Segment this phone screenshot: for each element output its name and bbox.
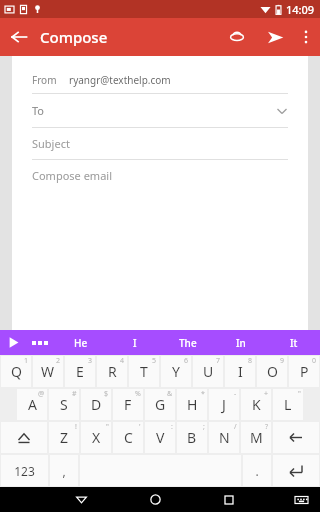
button[interactable]: From [32, 66, 288, 93]
button[interactable]: Back [0, 18, 38, 56]
button[interactable]: I [225, 356, 255, 387]
button[interactable]: U [193, 356, 223, 387]
button[interactable]: . [243, 455, 271, 486]
staticText: From [32, 73, 57, 87]
staticText: + [264, 389, 269, 399]
button[interactable]: A [17, 389, 47, 420]
staticText: ' [139, 422, 141, 432]
staticText: K [252, 395, 261, 414]
staticText: N [219, 428, 230, 447]
button[interactable]: D [81, 389, 111, 420]
staticText: Subject [32, 136, 70, 151]
staticText: 14:09 [286, 2, 315, 17]
staticText: S [60, 395, 68, 414]
staticText: . [255, 463, 259, 479]
button[interactable]: Z [49, 422, 79, 453]
staticText: P [300, 362, 309, 381]
staticText: 9 [280, 356, 285, 366]
button[interactable]: 123 [1, 455, 48, 486]
staticText: O [267, 362, 278, 381]
staticText: D [91, 395, 102, 414]
button[interactable]: He [54, 330, 108, 355]
button[interactable]: P [289, 356, 319, 387]
button[interactable]: K [241, 389, 271, 420]
staticText: F [124, 395, 132, 414]
staticText: The [179, 336, 197, 350]
button[interactable]: Attach [218, 18, 256, 56]
staticText: & [167, 389, 173, 399]
staticText: He [74, 336, 88, 350]
button[interactable]: F [113, 389, 143, 420]
staticText: 123 [14, 463, 35, 479]
staticText: W [41, 362, 55, 381]
button[interactable]: Recents [212, 487, 246, 512]
button[interactable]: Compose email [32, 160, 288, 191]
button[interactable]: G [145, 389, 175, 420]
button[interactable]: N [209, 422, 239, 453]
button[interactable]: In [214, 330, 267, 355]
button[interactable]: Back [64, 487, 98, 512]
staticText: Y [172, 362, 180, 381]
button[interactable]: Backspace [273, 422, 319, 453]
staticText: , [62, 463, 66, 479]
staticText: * [201, 389, 205, 399]
button[interactable]: S [49, 389, 79, 420]
staticText: I [133, 336, 137, 350]
staticText: ryangr@texthelp.com [69, 73, 171, 87]
button[interactable]: More predictions [26, 330, 54, 355]
button[interactable]: More options [294, 18, 318, 56]
staticText: G [155, 395, 166, 414]
staticText: H [187, 395, 198, 414]
button[interactable]: X [81, 422, 111, 453]
button[interactable]: I [108, 330, 161, 355]
button[interactable]: The [161, 330, 214, 355]
staticText: I [238, 362, 243, 381]
button[interactable]: Shift [1, 422, 47, 453]
button[interactable]: Q [1, 356, 31, 387]
button[interactable]: It [267, 330, 320, 355]
staticText: " [298, 389, 301, 399]
button[interactable]: O [257, 356, 287, 387]
staticText: " [106, 422, 109, 432]
staticText: Q [11, 362, 22, 381]
staticText: % [135, 389, 141, 399]
button[interactable]: Enter [273, 455, 319, 486]
staticText: R [108, 362, 117, 381]
button[interactable]: Subject [32, 128, 288, 159]
button[interactable]: H [177, 389, 207, 420]
staticText: ; [203, 422, 205, 432]
staticText: 0 [312, 356, 317, 366]
button[interactable]: V [145, 422, 175, 453]
button[interactable]: L [273, 389, 303, 420]
button[interactable]: Send [256, 18, 294, 56]
button[interactable]: J [209, 389, 239, 420]
staticText: $ [104, 389, 109, 399]
button[interactable]: Home [138, 487, 172, 512]
button[interactable]: R [97, 356, 127, 387]
button[interactable]: C [113, 422, 143, 453]
button[interactable]: M [241, 422, 271, 453]
staticText: U [203, 362, 214, 381]
button[interactable]: Play [0, 330, 26, 355]
button[interactable]: Switch keyboard [286, 487, 316, 512]
button[interactable]: , [50, 455, 78, 486]
button[interactable]: T [129, 356, 159, 387]
staticText: It [290, 336, 298, 350]
staticText: T [140, 362, 148, 381]
staticText: @ [38, 389, 45, 399]
staticText: 3 [88, 356, 93, 366]
button[interactable]: Y [161, 356, 191, 387]
staticText: B [187, 428, 197, 447]
staticText: J [222, 395, 226, 414]
staticText: C [124, 428, 133, 447]
button[interactable]: To [32, 94, 288, 127]
button[interactable]: B [177, 422, 207, 453]
staticText: E [76, 362, 84, 381]
button[interactable]: E [65, 356, 95, 387]
staticText: # [72, 389, 77, 399]
button[interactable]: W [33, 356, 63, 387]
staticText: ? [265, 422, 269, 432]
staticText: Compose email [32, 168, 112, 183]
staticText: : [171, 422, 173, 432]
